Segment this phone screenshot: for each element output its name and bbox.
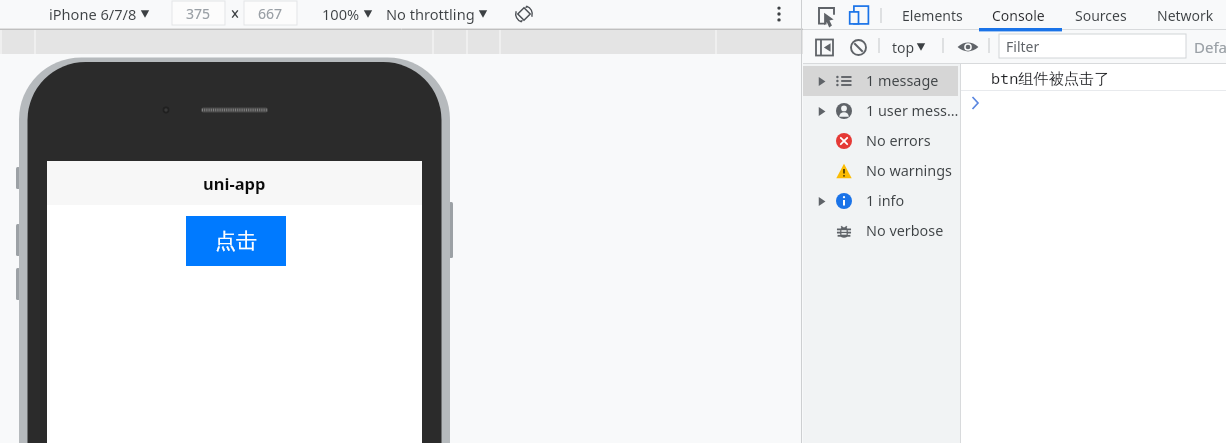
staticText: top bbox=[892, 38, 915, 57]
staticText: btn组件被点击了 bbox=[991, 68, 1110, 89]
button[interactable]: 667 bbox=[244, 1, 297, 25]
button[interactable]: Elements bbox=[891, 0, 974, 30]
staticText: Sources bbox=[1075, 6, 1127, 25]
staticText: Elements bbox=[902, 6, 963, 25]
button[interactable]: Inspect element bbox=[813, 0, 839, 30]
button[interactable]: Console bbox=[978, 0, 1058, 30]
staticText: No errors bbox=[866, 131, 958, 151]
staticText: 点击 bbox=[215, 228, 257, 254]
staticText: No verbose bbox=[866, 221, 958, 241]
staticText: Network bbox=[1157, 6, 1214, 25]
staticText: No warnings bbox=[866, 161, 958, 181]
staticText: Console bbox=[992, 6, 1045, 25]
button[interactable]: Sources bbox=[1062, 0, 1140, 30]
button[interactable]: 100% bbox=[322, 0, 373, 28]
button[interactable]: 1 info bbox=[803, 186, 958, 216]
button[interactable]: iPhone 6/7/8 bbox=[49, 0, 150, 28]
staticText: No throttling bbox=[386, 4, 475, 24]
staticText: uni-app bbox=[203, 172, 266, 194]
button[interactable]: Clear console bbox=[845, 30, 871, 64]
button[interactable]: 1 message bbox=[803, 66, 958, 96]
button[interactable]: Rotate device bbox=[512, 0, 536, 28]
button[interactable]: 1 user mess… bbox=[803, 96, 958, 126]
staticText: 1 message bbox=[866, 71, 958, 91]
button[interactable]: More options bbox=[768, 0, 790, 28]
button[interactable]: No verbose bbox=[803, 216, 958, 246]
staticText: 1 user mess… bbox=[866, 101, 958, 121]
button[interactable]: top bbox=[892, 30, 926, 64]
staticText: Filter bbox=[1006, 37, 1040, 56]
button[interactable]: Filter bbox=[999, 34, 1186, 58]
button[interactable]: Toggle device toolbar bbox=[845, 0, 873, 30]
staticText: iPhone 6/7/8 bbox=[49, 4, 137, 24]
button[interactable]: No errors bbox=[803, 126, 958, 156]
button[interactable]: No warnings bbox=[803, 156, 958, 186]
staticText: 1 info bbox=[866, 191, 958, 211]
button[interactable]: Toggle console sidebar bbox=[811, 30, 837, 64]
button[interactable]: No throttling bbox=[386, 0, 488, 28]
button[interactable]: 375 bbox=[172, 1, 225, 25]
button[interactable]: Network bbox=[1143, 0, 1226, 30]
staticText: Defau bbox=[1194, 37, 1226, 57]
staticText: 375 bbox=[186, 4, 211, 23]
staticText: 667 bbox=[258, 4, 283, 23]
button[interactable]: 点击 bbox=[186, 216, 286, 266]
button[interactable]: Create live expression bbox=[955, 30, 981, 64]
staticText: 100% bbox=[322, 4, 360, 24]
